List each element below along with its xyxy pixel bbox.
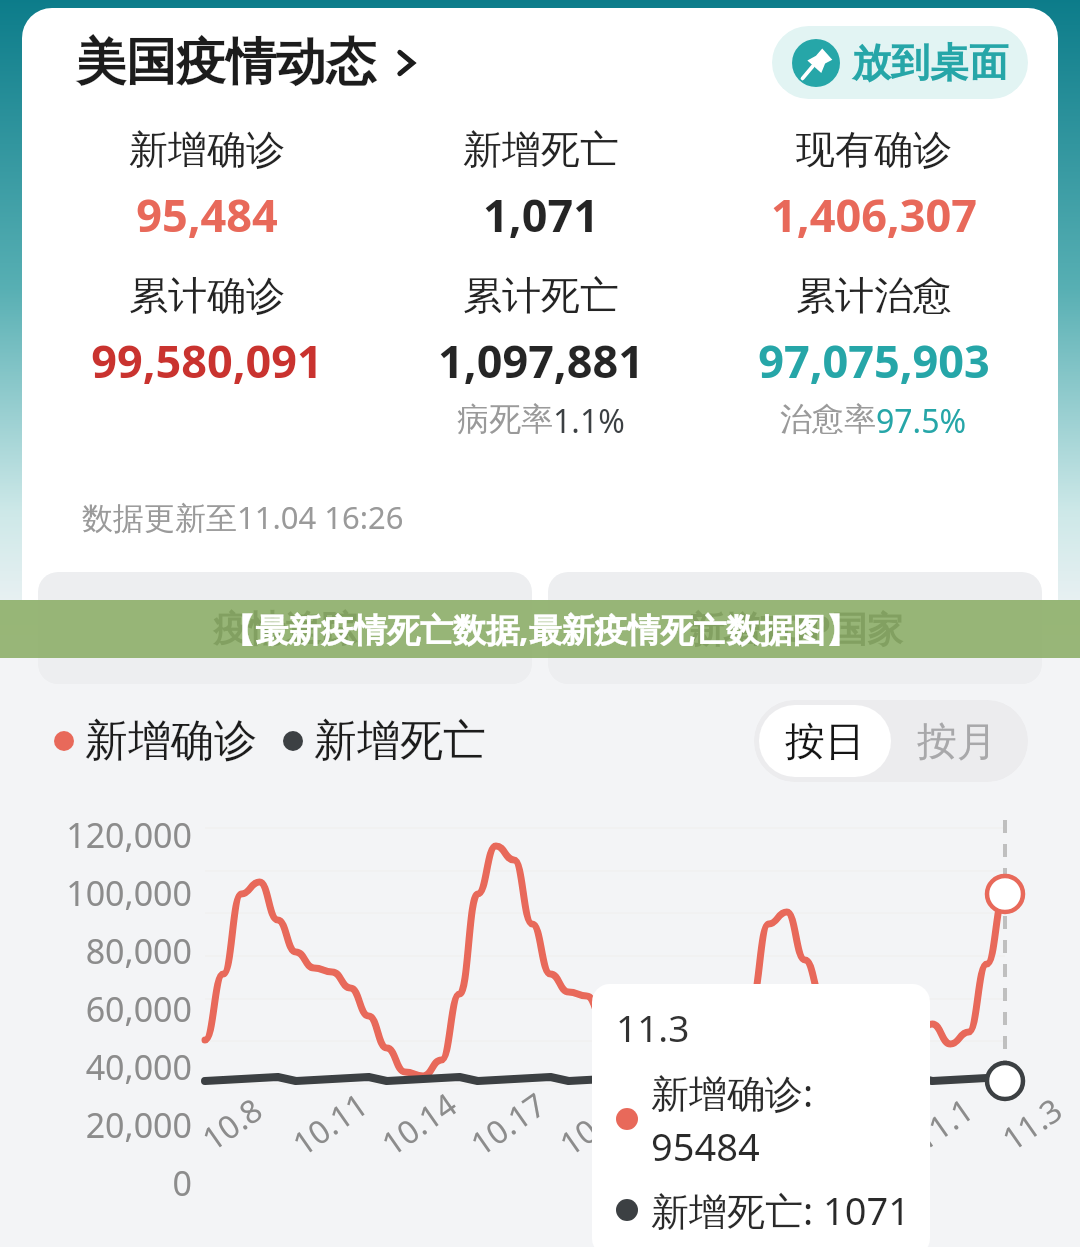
staticText: 按日: [785, 716, 865, 766]
staticText: 10.11: [284, 1082, 376, 1166]
staticText: 1,406,307: [771, 184, 977, 245]
staticText: 【最新疫情死亡数据,最新疫情死亡数据图】: [222, 607, 859, 652]
staticText: 1.1%: [553, 399, 625, 443]
staticText: 120,000: [0, 812, 192, 858]
staticText: 10.26: [728, 1082, 820, 1166]
staticText: 97.5%: [876, 399, 967, 443]
staticText: 治愈率: [780, 399, 876, 439]
button[interactable]: 疫情追踪: [38, 572, 532, 684]
staticText: 新增确诊: [85, 714, 257, 768]
staticText: 1,071: [483, 184, 599, 245]
staticText: 10.23: [639, 1082, 731, 1166]
staticText: 累计死亡: [463, 271, 619, 320]
staticText: 20,000: [0, 1102, 192, 1148]
staticText: 10.8: [193, 1088, 271, 1160]
staticText: 新增TOP国家: [688, 604, 903, 653]
staticText: 新增死亡: [463, 125, 619, 174]
button[interactable]: 新增TOP国家: [548, 572, 1042, 684]
staticText: 10.14: [373, 1082, 465, 1166]
staticText: 新增确诊: 95484: [651, 1066, 918, 1172]
staticText: 99,580,091: [91, 330, 323, 391]
button[interactable]: Add to home screen: [772, 26, 1028, 99]
staticText: 放到桌面: [852, 38, 1008, 87]
staticText: 11.3: [993, 1088, 1071, 1160]
other: Add to home screen: [792, 39, 840, 87]
staticText: 10.20: [551, 1082, 643, 1166]
button[interactable]: 新增死亡: [283, 714, 486, 768]
button[interactable]: 新增确诊: [54, 714, 257, 768]
staticText: 1,097,881: [438, 330, 644, 391]
staticText: 按月: [917, 716, 997, 766]
staticText: 疫情追踪: [213, 606, 357, 651]
staticText: 累计治愈: [796, 271, 952, 320]
staticText: 新增确诊: [129, 125, 285, 174]
staticText: 40,000: [0, 1044, 192, 1090]
staticText: 累计确诊: [129, 271, 285, 320]
staticText: 10.17: [462, 1082, 554, 1166]
staticText: 新增死亡: [314, 714, 486, 768]
staticText: 11.3: [616, 1002, 690, 1052]
staticText: 11.1: [904, 1088, 982, 1160]
staticText: 美国疫情动态: [76, 31, 376, 94]
staticText: 100,000: [0, 870, 192, 916]
staticText: 60,000: [0, 986, 192, 1032]
staticText: 97,075,903: [758, 330, 990, 391]
staticText: 新增死亡: 1071: [651, 1184, 911, 1236]
staticText: 0: [0, 1160, 192, 1206]
button[interactable]: 按月: [891, 705, 1023, 777]
button[interactable]: 美国疫情动态: [76, 31, 420, 94]
staticText: 病死率: [457, 399, 553, 439]
staticText: 80,000: [0, 928, 192, 974]
staticText: 95,484: [136, 184, 278, 245]
staticText: 现有确诊: [796, 125, 952, 174]
staticText: 数据更新至11.04 16:26: [82, 496, 404, 538]
button[interactable]: 按日: [759, 705, 891, 777]
